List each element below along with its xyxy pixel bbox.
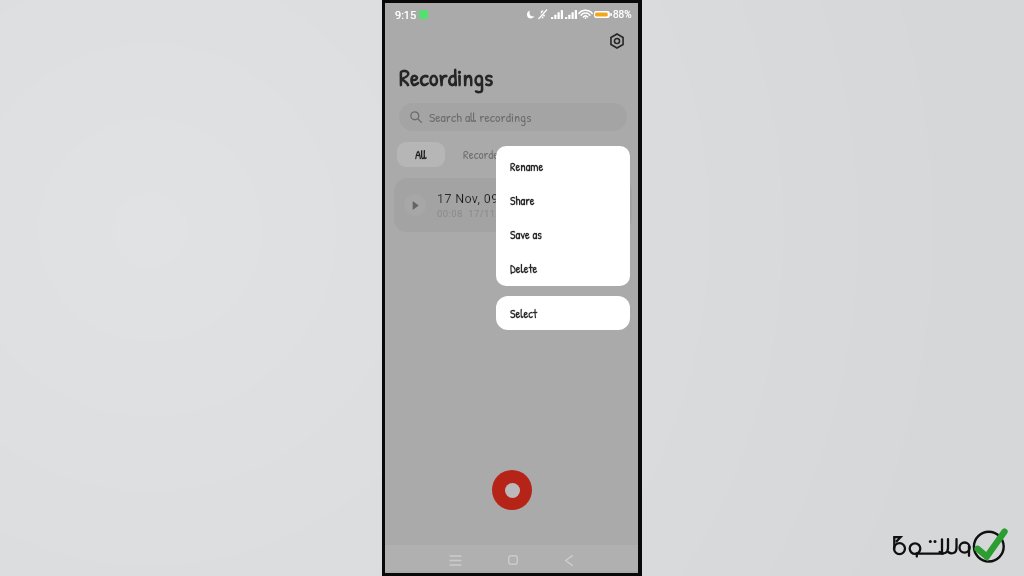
staticText: Delete — [510, 260, 538, 276]
staticText: Share — [510, 192, 535, 208]
staticText: Recorder — [463, 146, 504, 163]
button[interactable]: Select — [496, 296, 630, 330]
button[interactable]: Save as — [496, 217, 630, 251]
staticText: Search all recordings — [429, 108, 532, 126]
button[interactable]: 17 Nov, 09. — [394, 178, 632, 232]
button[interactable]: Recorder — [457, 142, 509, 167]
staticText: Save as — [510, 226, 542, 242]
staticText: 00:08 17/11/2 — [437, 208, 506, 219]
button[interactable]: Home — [498, 550, 527, 570]
button[interactable]: Recents — [441, 550, 470, 570]
button[interactable]: Delete — [496, 251, 630, 285]
staticText: Rename — [510, 158, 544, 174]
button[interactable]: Share — [496, 183, 630, 217]
staticText: Select — [510, 305, 538, 321]
staticText: 17 Nov, 09. — [437, 191, 503, 206]
button[interactable]: Back — [554, 550, 583, 570]
staticText: 9:15 — [395, 9, 417, 22]
button[interactable]: All — [397, 142, 445, 167]
staticText: All — [415, 146, 427, 163]
button[interactable]: Record — [492, 470, 532, 510]
button[interactable]: Settings — [606, 30, 628, 52]
staticText: Recordings — [399, 61, 494, 93]
staticText: 88% — [613, 9, 632, 21]
button[interactable]: Rename — [496, 149, 630, 183]
button[interactable]: Search all recordings — [399, 103, 627, 131]
